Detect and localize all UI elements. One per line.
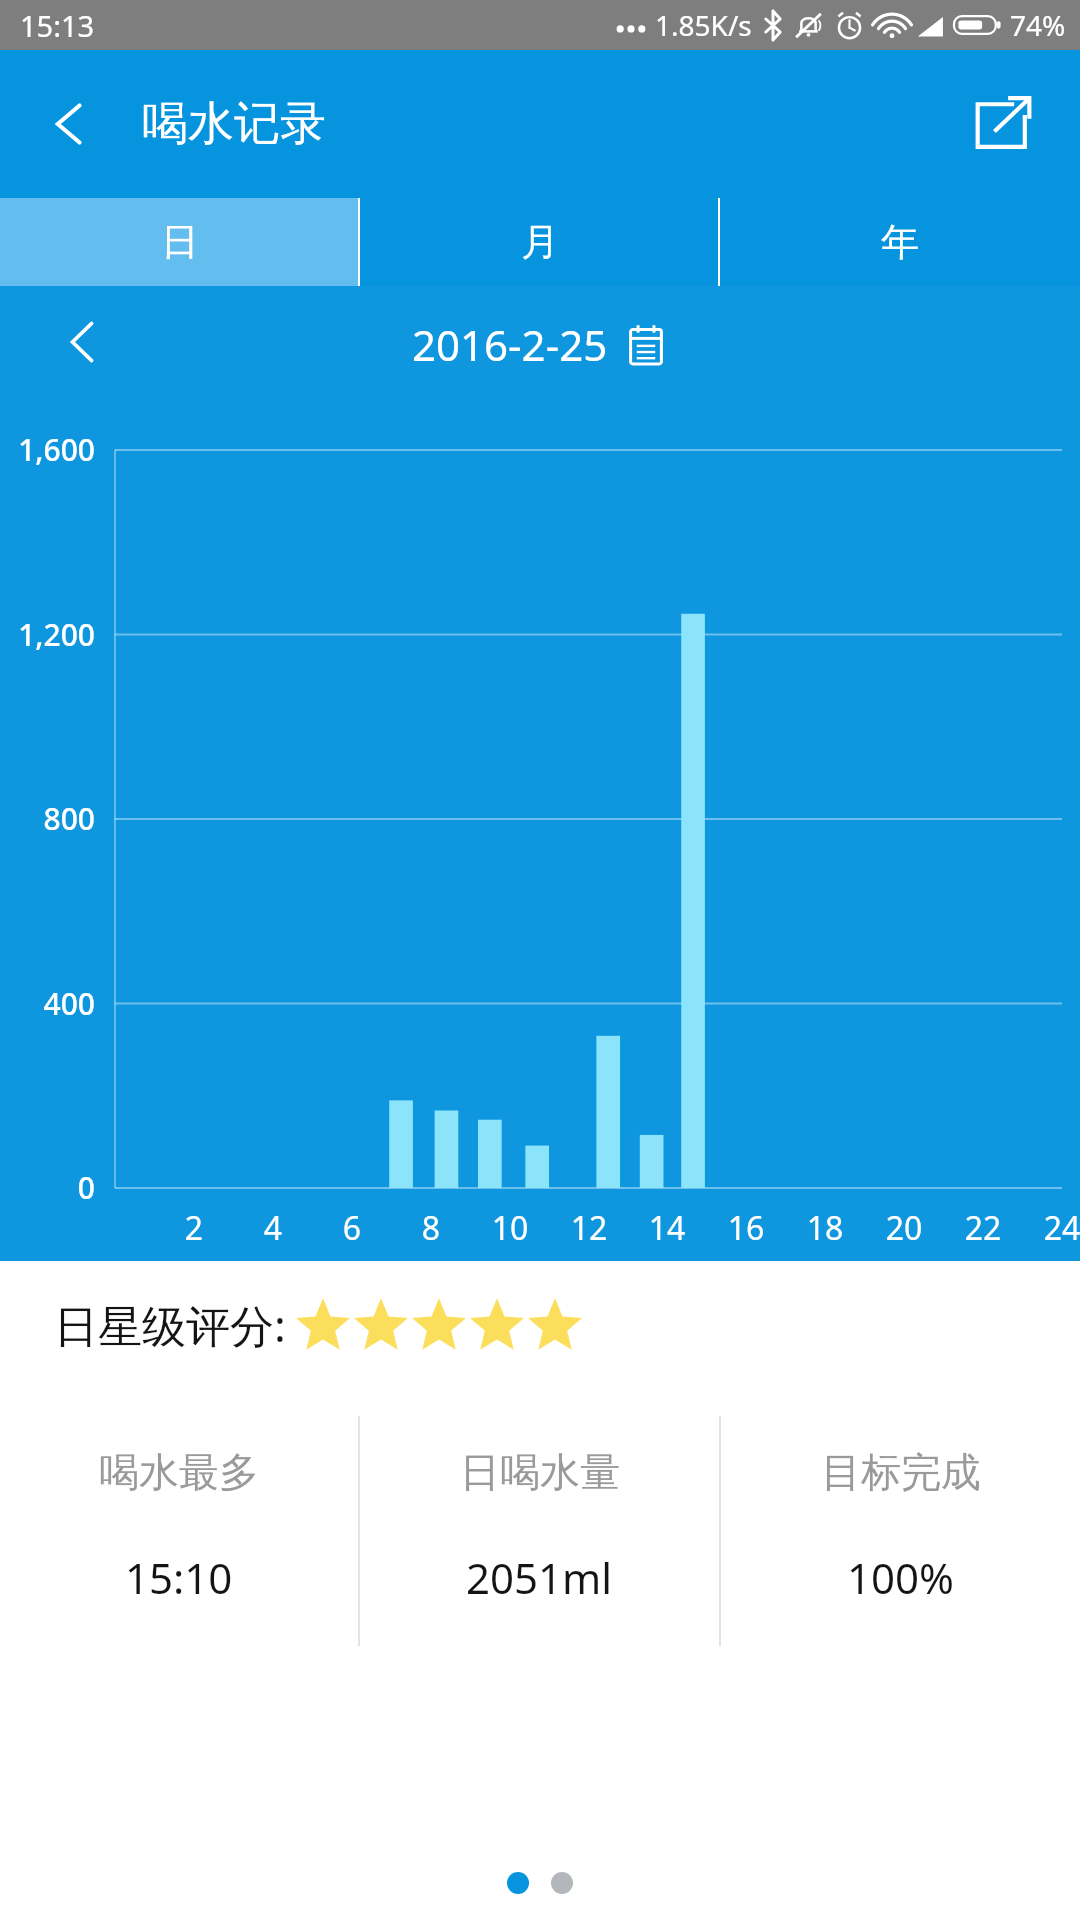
- button[interactable]: Share: [964, 86, 1040, 162]
- staticText: 800: [0, 798, 95, 839]
- staticText: 2016-2-25: [412, 316, 608, 373]
- staticText: 0: [0, 1167, 95, 1208]
- staticText: 1,600: [0, 429, 95, 470]
- button[interactable]: [507, 1872, 529, 1894]
- staticText: 8: [391, 1206, 471, 1250]
- staticText: 400: [0, 983, 95, 1024]
- staticText: 目标完成: [821, 1447, 981, 1497]
- staticText: 74%: [1010, 6, 1066, 44]
- button[interactable]: Previous day: [52, 311, 114, 373]
- staticText: 100%: [847, 1549, 954, 1606]
- staticText: 喝水记录: [142, 95, 326, 153]
- staticText: 1,200: [0, 614, 95, 655]
- staticText: 喝水最多: [99, 1447, 259, 1497]
- staticText: 2: [154, 1206, 234, 1250]
- button[interactable]: [551, 1872, 573, 1894]
- staticText: 24: [1022, 1206, 1080, 1250]
- staticText: 月: [521, 218, 559, 266]
- staticText: 18: [785, 1206, 865, 1250]
- button[interactable]: 月: [360, 198, 720, 286]
- button[interactable]: Back: [36, 91, 102, 157]
- staticText: 2051ml: [466, 1549, 613, 1606]
- staticText: 4: [233, 1206, 313, 1250]
- staticText: 12: [549, 1206, 629, 1250]
- staticText: 10: [470, 1206, 550, 1250]
- button[interactable]: 日: [0, 198, 360, 286]
- staticText: 日星级评分:: [54, 1295, 286, 1355]
- button[interactable]: 喝水最多: [0, 1401, 358, 1661]
- staticText: 日: [161, 218, 199, 266]
- staticText: 15:10: [125, 1549, 233, 1606]
- staticText: 1.85K/s: [655, 6, 752, 44]
- staticText: 22: [943, 1206, 1023, 1250]
- staticText: 6: [312, 1206, 392, 1250]
- button[interactable]: 2016-2-25: [412, 316, 668, 373]
- staticText: 日喝水量: [460, 1447, 620, 1497]
- staticText: 15:13: [20, 6, 95, 45]
- staticText: 14: [627, 1206, 707, 1250]
- staticText: 16: [706, 1206, 786, 1250]
- button[interactable]: 目标完成: [721, 1401, 1080, 1661]
- button[interactable]: 日喝水量: [360, 1401, 719, 1661]
- staticText: 20: [864, 1206, 944, 1250]
- staticText: 年: [881, 218, 919, 266]
- button[interactable]: 年: [720, 198, 1080, 286]
